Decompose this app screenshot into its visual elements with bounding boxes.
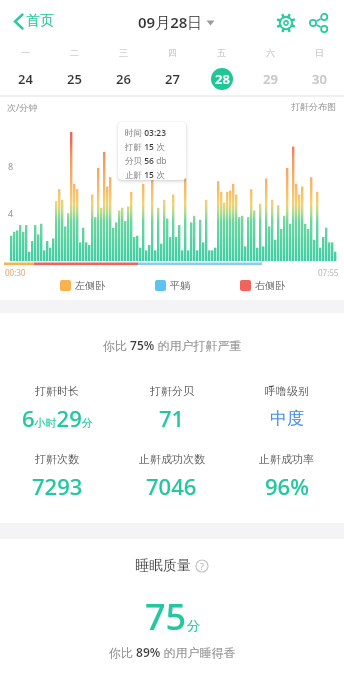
staticText: 止鼾成功次数 — [139, 452, 205, 466]
staticText: 30 — [312, 70, 327, 88]
staticText: 打鼾次数 — [35, 452, 79, 466]
button[interactable]: 打鼾分贝 — [114, 384, 229, 433]
staticText: 分 — [187, 617, 200, 633]
staticText: 时间 03:23 — [125, 127, 167, 139]
staticText: 4 — [8, 207, 14, 219]
staticText: 7046 — [146, 471, 197, 501]
staticText: 五 — [217, 47, 226, 58]
button[interactable] — [309, 13, 329, 33]
staticText: 71 — [159, 403, 185, 433]
button[interactable]: 26 — [99, 66, 148, 92]
staticText: 左侧卧 — [75, 279, 105, 292]
staticText: 75 — [145, 592, 187, 641]
staticText: 00:30 — [5, 267, 26, 278]
staticText: 日 — [315, 47, 324, 58]
button[interactable]: 止鼾成功率 — [229, 452, 344, 501]
button[interactable]: 打鼾次数 — [0, 452, 114, 501]
button[interactable]: 27 — [148, 66, 197, 92]
staticText: 8 — [8, 160, 14, 172]
staticText: 睡眠质量 — [135, 557, 191, 575]
button[interactable]: 30 — [295, 66, 344, 92]
staticText: 止鼾 15 次 — [125, 169, 165, 180]
staticText: 打鼾 15 次 — [125, 141, 165, 153]
staticText: 次/分钟 — [7, 101, 38, 113]
button[interactable]: 24 — [0, 66, 50, 92]
staticText: 你比 75% 的用户打鼾严重 — [103, 337, 242, 353]
button[interactable]: 左侧卧 — [60, 279, 105, 292]
staticText: 打鼾分布图 — [291, 101, 336, 112]
staticText: 29 — [263, 70, 278, 88]
button[interactable]: 平躺 — [155, 279, 190, 292]
button[interactable]: 右侧卧 — [240, 279, 285, 292]
staticText: 首页 — [26, 12, 54, 30]
staticText: 26 — [116, 70, 131, 88]
staticText: 平躺 — [170, 279, 190, 292]
staticText: 7293 — [32, 471, 83, 501]
staticText: 28 — [215, 70, 230, 88]
staticText: 打鼾分贝 — [150, 384, 194, 398]
staticText: 四 — [168, 47, 177, 58]
button[interactable]: 打鼾时长 — [0, 384, 114, 433]
staticText: 25 — [67, 70, 82, 88]
staticText: 中度 — [270, 408, 304, 429]
button[interactable]: 28 — [197, 66, 246, 92]
button[interactable]: 09月28日 — [138, 12, 215, 32]
button[interactable]: 睡眠质量 — [135, 557, 209, 575]
staticText: 分贝 56 db — [125, 155, 167, 167]
staticText: 24 — [18, 70, 33, 88]
button[interactable]: 25 — [50, 66, 99, 92]
staticText: 09月28日 — [138, 12, 203, 32]
staticText: 右侧卧 — [255, 279, 285, 292]
staticText: 二 — [70, 47, 79, 58]
staticText: 六 — [266, 47, 275, 58]
staticText: 你比 89% 的用户睡得香 — [109, 644, 236, 660]
button[interactable]: 29 — [246, 66, 295, 92]
staticText: 一 — [21, 47, 30, 58]
staticText: 27 — [165, 70, 180, 88]
staticText: 呼噜级别 — [265, 384, 309, 398]
staticText: 96% — [265, 471, 309, 501]
staticText: 6小时29分 — [22, 403, 93, 433]
staticText: 07:55 — [318, 267, 339, 278]
staticText: 打鼾时长 — [35, 384, 79, 398]
staticText: 三 — [119, 47, 128, 58]
button[interactable]: 止鼾成功次数 — [114, 452, 229, 501]
button[interactable]: 首页 — [13, 12, 54, 30]
staticText: 止鼾成功率 — [259, 452, 314, 466]
staticText: ? — [200, 560, 204, 572]
button[interactable] — [276, 13, 296, 33]
button[interactable]: 呼噜级别 — [229, 384, 344, 433]
